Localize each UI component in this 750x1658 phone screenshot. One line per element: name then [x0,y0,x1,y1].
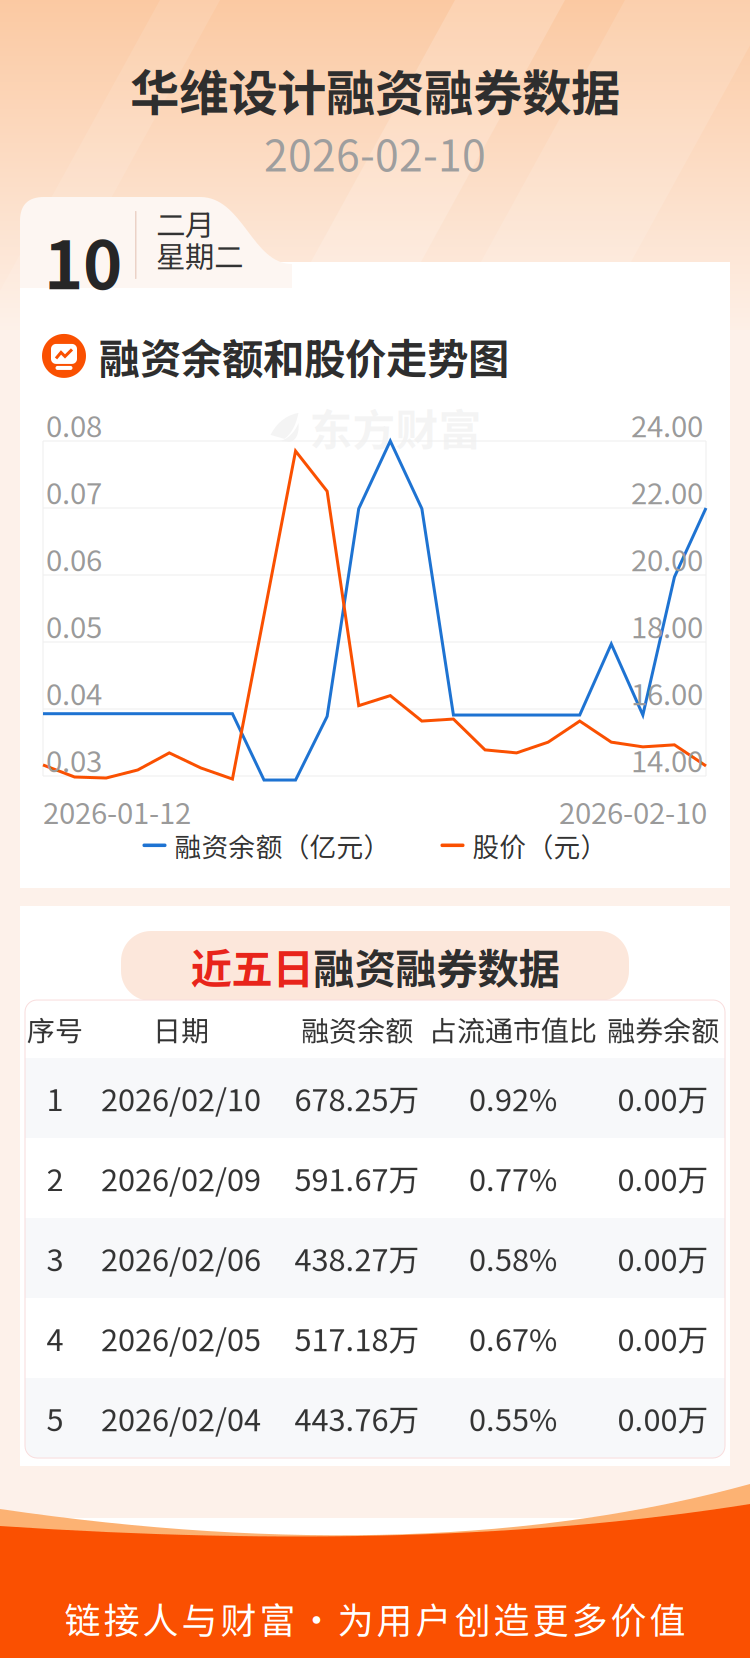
staticText: 2026/02/04 [101,1396,261,1440]
staticText: 0.77% [469,1156,557,1200]
staticText: 20.00 [631,537,703,580]
staticText: 0.08 [46,403,102,446]
staticText: 2026/02/10 [101,1076,261,1120]
staticText: 443.76万 [294,1396,419,1440]
staticText: 0.00万 [617,1076,708,1120]
staticText: 近五日 [190,936,313,996]
staticText: 序号 [27,1009,83,1049]
staticText: 占流通市值比 [429,1009,597,1049]
staticText: 438.27万 [294,1236,419,1280]
staticText: 678.25万 [294,1076,419,1120]
staticText: 0.03 [46,738,102,781]
staticText: 0.00万 [617,1396,708,1440]
staticText: 591.67万 [294,1156,419,1200]
staticText: 2026/02/05 [101,1316,261,1360]
staticText: 0.00万 [617,1316,708,1360]
staticText: 18.00 [631,604,703,647]
staticText: 2026-02-10 [559,790,707,832]
staticText: 10 [44,212,122,308]
staticText: 0.00万 [617,1156,708,1200]
staticText: 0.06 [46,537,102,580]
staticText: 24.00 [631,403,703,446]
staticText: 0.05 [46,604,102,647]
staticText: 2026-01-12 [43,790,191,832]
staticText: 股价（元） [472,826,607,865]
staticText: 22.00 [631,470,703,513]
staticText: 2026-02-10 [264,122,486,184]
staticText: 链接人与财富·为用户创造更多价值 [64,1592,685,1644]
staticText: 二月 [156,202,214,244]
staticText: 0.58% [469,1236,557,1280]
staticText: 16.00 [631,671,703,714]
staticText: 517.18万 [294,1316,419,1360]
staticText: 1 [46,1076,63,1120]
staticText: 融资余额和股价走势图 [99,326,509,386]
staticText: 0.55% [469,1396,557,1440]
staticText: 3 [46,1236,63,1280]
staticText: 融资余额 [301,1009,413,1049]
staticText: 0.00万 [617,1236,708,1280]
staticText: 东方财富 [309,396,481,458]
staticText: 14.00 [631,738,703,781]
staticText: 2 [46,1156,63,1200]
staticText: 0.07 [46,470,102,513]
staticText: 日期 [153,1009,209,1049]
staticText: 0.92% [469,1076,557,1120]
staticText: 5 [46,1396,63,1440]
staticText: 融资融券数据 [313,936,559,996]
staticText: 星期二 [156,234,243,276]
staticText: 0.67% [469,1316,557,1360]
staticText: 融资余额（亿元） [174,826,390,865]
staticText: 0.04 [46,671,102,714]
staticText: 4 [46,1316,63,1360]
staticText: 2026/02/09 [101,1156,261,1200]
staticText: 华维设计融资融券数据 [130,54,620,125]
staticText: 融券余额 [607,1009,719,1049]
staticText: 2026/02/06 [101,1236,261,1280]
